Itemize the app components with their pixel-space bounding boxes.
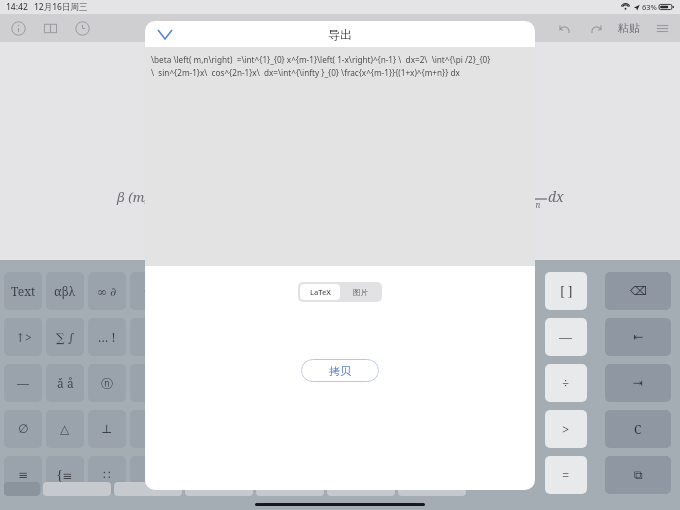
staticText: ⇤ bbox=[633, 330, 644, 344]
button[interactable]: ⇥ bbox=[605, 364, 671, 402]
button[interactable]: 粘贴 bbox=[616, 17, 642, 39]
button[interactable] bbox=[327, 482, 395, 496]
staticText: 拷贝 bbox=[329, 364, 351, 378]
button[interactable]: {≡ bbox=[46, 456, 84, 494]
button[interactable] bbox=[114, 482, 182, 496]
staticText: 粘贴 bbox=[618, 21, 640, 35]
button[interactable]: 拷贝 bbox=[301, 359, 379, 382]
button[interactable]: △ bbox=[46, 410, 84, 448]
staticText: ∑ ∫ bbox=[56, 329, 74, 345]
staticText: ∷ bbox=[103, 468, 111, 482]
staticText: \beta \left( m,n\right) =\int^{1}_{0} x^… bbox=[151, 54, 491, 65]
button[interactable]: Redo bbox=[586, 18, 606, 38]
staticText: [ ] bbox=[560, 282, 573, 300]
staticText: β (m, bbox=[117, 188, 148, 206]
button[interactable]: ∅ bbox=[4, 410, 42, 448]
staticText: C bbox=[634, 421, 642, 437]
button[interactable]: ∠ bbox=[130, 364, 168, 402]
button[interactable]: ∞ ∂ bbox=[88, 272, 126, 310]
staticText: 导出 bbox=[328, 27, 352, 42]
button[interactable]: Close bbox=[153, 22, 177, 46]
button[interactable]: … ! bbox=[88, 318, 126, 356]
button[interactable]: C bbox=[605, 410, 671, 448]
staticText: ⊥ bbox=[101, 422, 113, 436]
button[interactable] bbox=[185, 482, 253, 496]
button[interactable]: Undo bbox=[554, 18, 574, 38]
staticText: … ! bbox=[98, 329, 116, 345]
staticText: ∠ bbox=[144, 376, 155, 390]
staticText: → bbox=[144, 284, 155, 298]
staticText: dx bbox=[548, 187, 564, 206]
staticText: — bbox=[559, 328, 573, 346]
button[interactable]: [ ] bbox=[545, 272, 587, 310]
staticText: ⓝ bbox=[101, 376, 113, 391]
staticText: αβλ bbox=[54, 283, 76, 299]
staticText: \ sin^{2m-1}x\ cos^{2n-1}x\ dx=\int^{\in… bbox=[151, 67, 460, 78]
button[interactable]: ∷ bbox=[88, 456, 126, 494]
button[interactable]: Library bbox=[40, 18, 60, 38]
staticText: △ bbox=[60, 422, 70, 436]
button[interactable]: ≡ bbox=[4, 456, 42, 494]
button[interactable]: > bbox=[545, 410, 587, 448]
staticText: ⇥ bbox=[633, 376, 644, 390]
button[interactable]: ⊕ bbox=[130, 456, 168, 494]
staticText: 12月16日周三 bbox=[34, 1, 88, 13]
button[interactable]: ǎ å bbox=[46, 364, 84, 402]
button[interactable]: αβλ bbox=[46, 272, 84, 310]
button[interactable]: LaTeX bbox=[300, 284, 340, 300]
staticText: ∞ ∂ bbox=[97, 283, 117, 299]
staticText: ǎ å bbox=[57, 375, 74, 391]
button[interactable]: ∑ ∫ bbox=[46, 318, 84, 356]
button[interactable]: → bbox=[130, 272, 168, 310]
staticText: 63% bbox=[642, 2, 657, 12]
staticText: — bbox=[17, 375, 30, 391]
staticText: +n bbox=[531, 199, 541, 210]
button[interactable] bbox=[256, 482, 324, 496]
button[interactable]: ≤ bbox=[130, 318, 168, 356]
button[interactable] bbox=[398, 482, 466, 496]
staticText: ∅ bbox=[18, 422, 29, 436]
button[interactable]: ⇤ bbox=[605, 318, 671, 356]
button[interactable]: Text bbox=[4, 272, 42, 310]
staticText: ⧉ bbox=[634, 469, 643, 481]
button[interactable]: Menu bbox=[652, 18, 672, 38]
button[interactable]: ⧉ bbox=[605, 456, 671, 494]
staticText: ↑> bbox=[15, 329, 32, 345]
button[interactable] bbox=[43, 482, 111, 496]
staticText: ⊕ bbox=[144, 468, 155, 482]
staticText: 14:42 bbox=[6, 1, 28, 13]
button[interactable]: ⊥ bbox=[88, 410, 126, 448]
staticText: > bbox=[562, 420, 570, 438]
button[interactable]: \beta \left( m,n\right) =\int^{1}_{0} x^… bbox=[145, 47, 535, 266]
staticText: = bbox=[562, 466, 570, 484]
button[interactable]: ↑> bbox=[4, 318, 42, 356]
staticText: ⌫ bbox=[630, 284, 647, 298]
button[interactable]: 图片 bbox=[340, 284, 380, 300]
button[interactable]: ∥ bbox=[130, 410, 168, 448]
staticText: LaTeX bbox=[310, 287, 331, 297]
button[interactable]: History bbox=[72, 18, 92, 38]
button[interactable]: — bbox=[545, 318, 587, 356]
staticText: ≡ bbox=[18, 468, 29, 482]
staticText: {≡ bbox=[57, 467, 73, 483]
staticText: ≤ bbox=[144, 330, 155, 344]
button[interactable]: ÷ bbox=[545, 364, 587, 402]
staticText: 图片 bbox=[353, 288, 368, 297]
button[interactable]: Info bbox=[8, 18, 28, 38]
button[interactable]: = bbox=[545, 456, 587, 494]
staticText: ÷ bbox=[562, 374, 570, 392]
button[interactable]: ⌫ bbox=[605, 272, 671, 310]
button[interactable]: ⓝ bbox=[88, 364, 126, 402]
button[interactable]: — bbox=[4, 364, 42, 402]
staticText: Text bbox=[11, 283, 36, 299]
